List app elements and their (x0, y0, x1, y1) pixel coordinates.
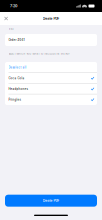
staticText: 7:20 (10, 4, 17, 8)
staticText: Create PDF (42, 17, 59, 20)
button[interactable]: Deselect all (5, 62, 97, 73)
button[interactable]: Close (1, 14, 11, 23)
staticText: TITLE (8, 28, 13, 31)
button[interactable]: Create PDF (0, 195, 102, 207)
button[interactable]: Pringles (5, 94, 97, 105)
staticText: Coca Cola (8, 76, 24, 80)
button[interactable]: Coca Cola (5, 73, 97, 84)
button[interactable]: Headphones (5, 83, 97, 94)
staticText: SELECT WHICH YOU WANT TO INCLUDE IN THE … (8, 53, 69, 55)
staticText: Order #041 (8, 38, 24, 42)
staticText: Pringles (8, 98, 20, 101)
staticText: Create PDF (42, 199, 59, 203)
staticText: Headphones (8, 87, 27, 91)
staticText: Deselect all (8, 66, 26, 69)
